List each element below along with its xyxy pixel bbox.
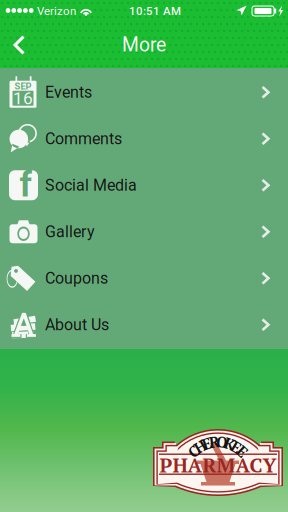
staticText: R <box>209 432 219 452</box>
button[interactable]: f <box>0 162 288 208</box>
staticText: Comments <box>45 129 122 148</box>
button[interactable]: SEP <box>0 69 288 115</box>
staticText: More <box>122 34 166 56</box>
staticText: K <box>224 434 234 453</box>
button[interactable]: About Us <box>0 301 288 348</box>
staticText: SEP <box>14 81 31 92</box>
staticText: E <box>237 442 246 461</box>
staticText: H <box>194 437 205 457</box>
staticText: f <box>19 164 31 205</box>
staticText: C <box>189 442 199 461</box>
staticText: PHARMACY <box>159 452 276 478</box>
staticText: O <box>216 432 227 452</box>
staticText: Coupons <box>45 269 108 288</box>
staticText: Events <box>45 83 92 102</box>
button[interactable]: Coupons <box>0 255 288 301</box>
staticText: Verizon <box>37 4 76 18</box>
button[interactable]: Gallery <box>0 208 288 255</box>
staticText: E <box>202 434 211 453</box>
staticText: 10:51 AM <box>129 4 181 18</box>
staticText: 16 <box>13 88 33 108</box>
staticText: Gallery <box>45 222 95 241</box>
button[interactable]: Back <box>0 22 40 68</box>
staticText: Social Media <box>45 176 137 195</box>
staticText: E <box>231 437 240 457</box>
staticText: About Us <box>45 315 109 334</box>
button[interactable]: Comments <box>0 115 288 162</box>
